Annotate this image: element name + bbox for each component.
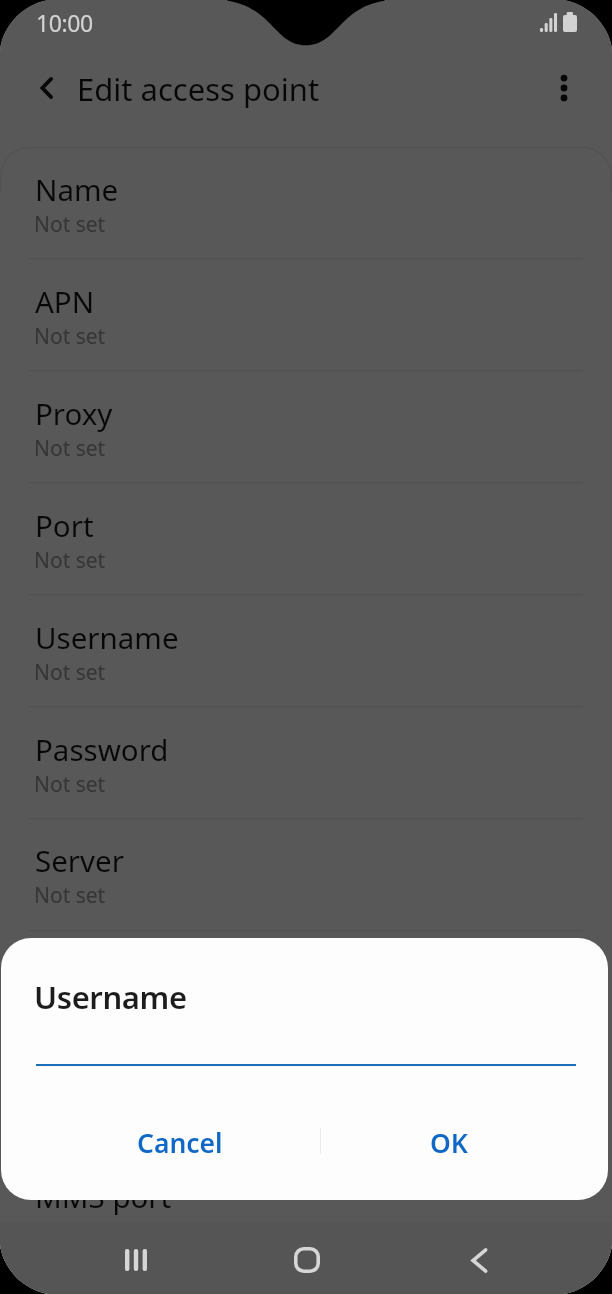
button[interactable]: Username [0,595,612,707]
staticText: Server [35,840,124,880]
staticText: MMS proxy [35,1064,191,1104]
button[interactable]: Proxy [0,371,612,483]
staticText: Username [35,617,179,657]
staticText: Not set [34,881,106,910]
staticText: Not set [34,546,106,575]
staticText: 10:00 [36,7,93,38]
staticText: Name [35,169,119,209]
staticText: Not set [34,434,106,463]
staticText: Port [35,505,94,545]
button[interactable]: Server [0,818,612,930]
staticText: Edit access point [77,68,320,110]
staticText: Password [35,729,169,769]
staticText: Not set [34,770,106,799]
staticText: OK [430,1125,469,1161]
button[interactable]: Cancel [39,1115,320,1171]
staticText: Not set [34,658,106,687]
staticText: Proxy [35,393,113,433]
staticText: MMSC [35,952,124,992]
button[interactable]: Back [449,1230,509,1290]
button[interactable]: Home [277,1230,337,1290]
staticText: APN [35,281,95,321]
button[interactable]: MMS port [0,1154,612,1266]
staticText: Cancel [137,1125,223,1161]
staticText: Not set [34,993,106,1022]
button[interactable]: MMS proxy [0,1042,612,1154]
button[interactable]: Navigate up [21,60,77,116]
button[interactable]: Recent apps [106,1230,166,1290]
staticText: MMS port [35,1176,172,1216]
button[interactable]: MMSC [0,930,612,1042]
staticText: Not set [34,322,106,351]
button[interactable]: Port [0,483,612,595]
button[interactable]: OK [321,1115,578,1171]
button[interactable]: APN [0,259,612,371]
staticText: Not set [34,210,106,239]
button[interactable]: Name [0,147,612,259]
staticText: Username [34,976,187,1018]
button[interactable]: More options [536,60,592,116]
button[interactable]: Password [0,707,612,819]
